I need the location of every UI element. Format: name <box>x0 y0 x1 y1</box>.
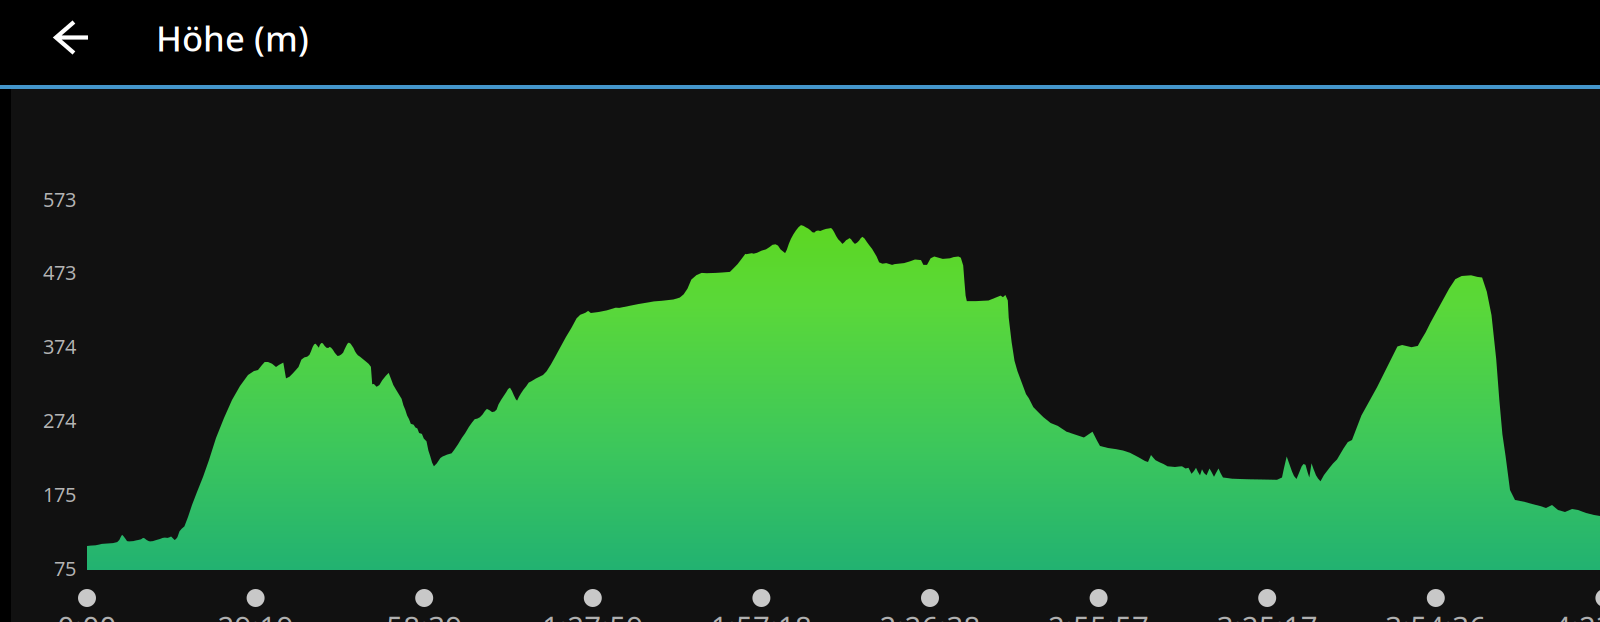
staticText: 473 <box>43 259 76 286</box>
staticText: Höhe (m) <box>156 15 309 61</box>
staticText: 374 <box>43 333 76 360</box>
staticText: 75 <box>54 555 76 582</box>
staticText: 3:25:17 <box>1217 607 1318 622</box>
staticText: 274 <box>43 407 76 434</box>
staticText: 29:19 <box>218 607 294 622</box>
staticText: 2:55:57 <box>1048 607 1149 622</box>
staticText: 2:26:38 <box>879 607 980 622</box>
staticText: 175 <box>43 481 76 508</box>
staticText: 573 <box>43 186 76 213</box>
button[interactable]: Back <box>0 0 108 85</box>
staticText: 0:00 <box>57 607 116 622</box>
staticText: 4:23:56 <box>1554 607 1600 622</box>
staticText: 1:57:18 <box>711 607 812 622</box>
staticText: 1:27:59 <box>542 607 643 622</box>
staticText: 58:39 <box>386 607 462 622</box>
staticText: 3:54:36 <box>1385 607 1486 622</box>
